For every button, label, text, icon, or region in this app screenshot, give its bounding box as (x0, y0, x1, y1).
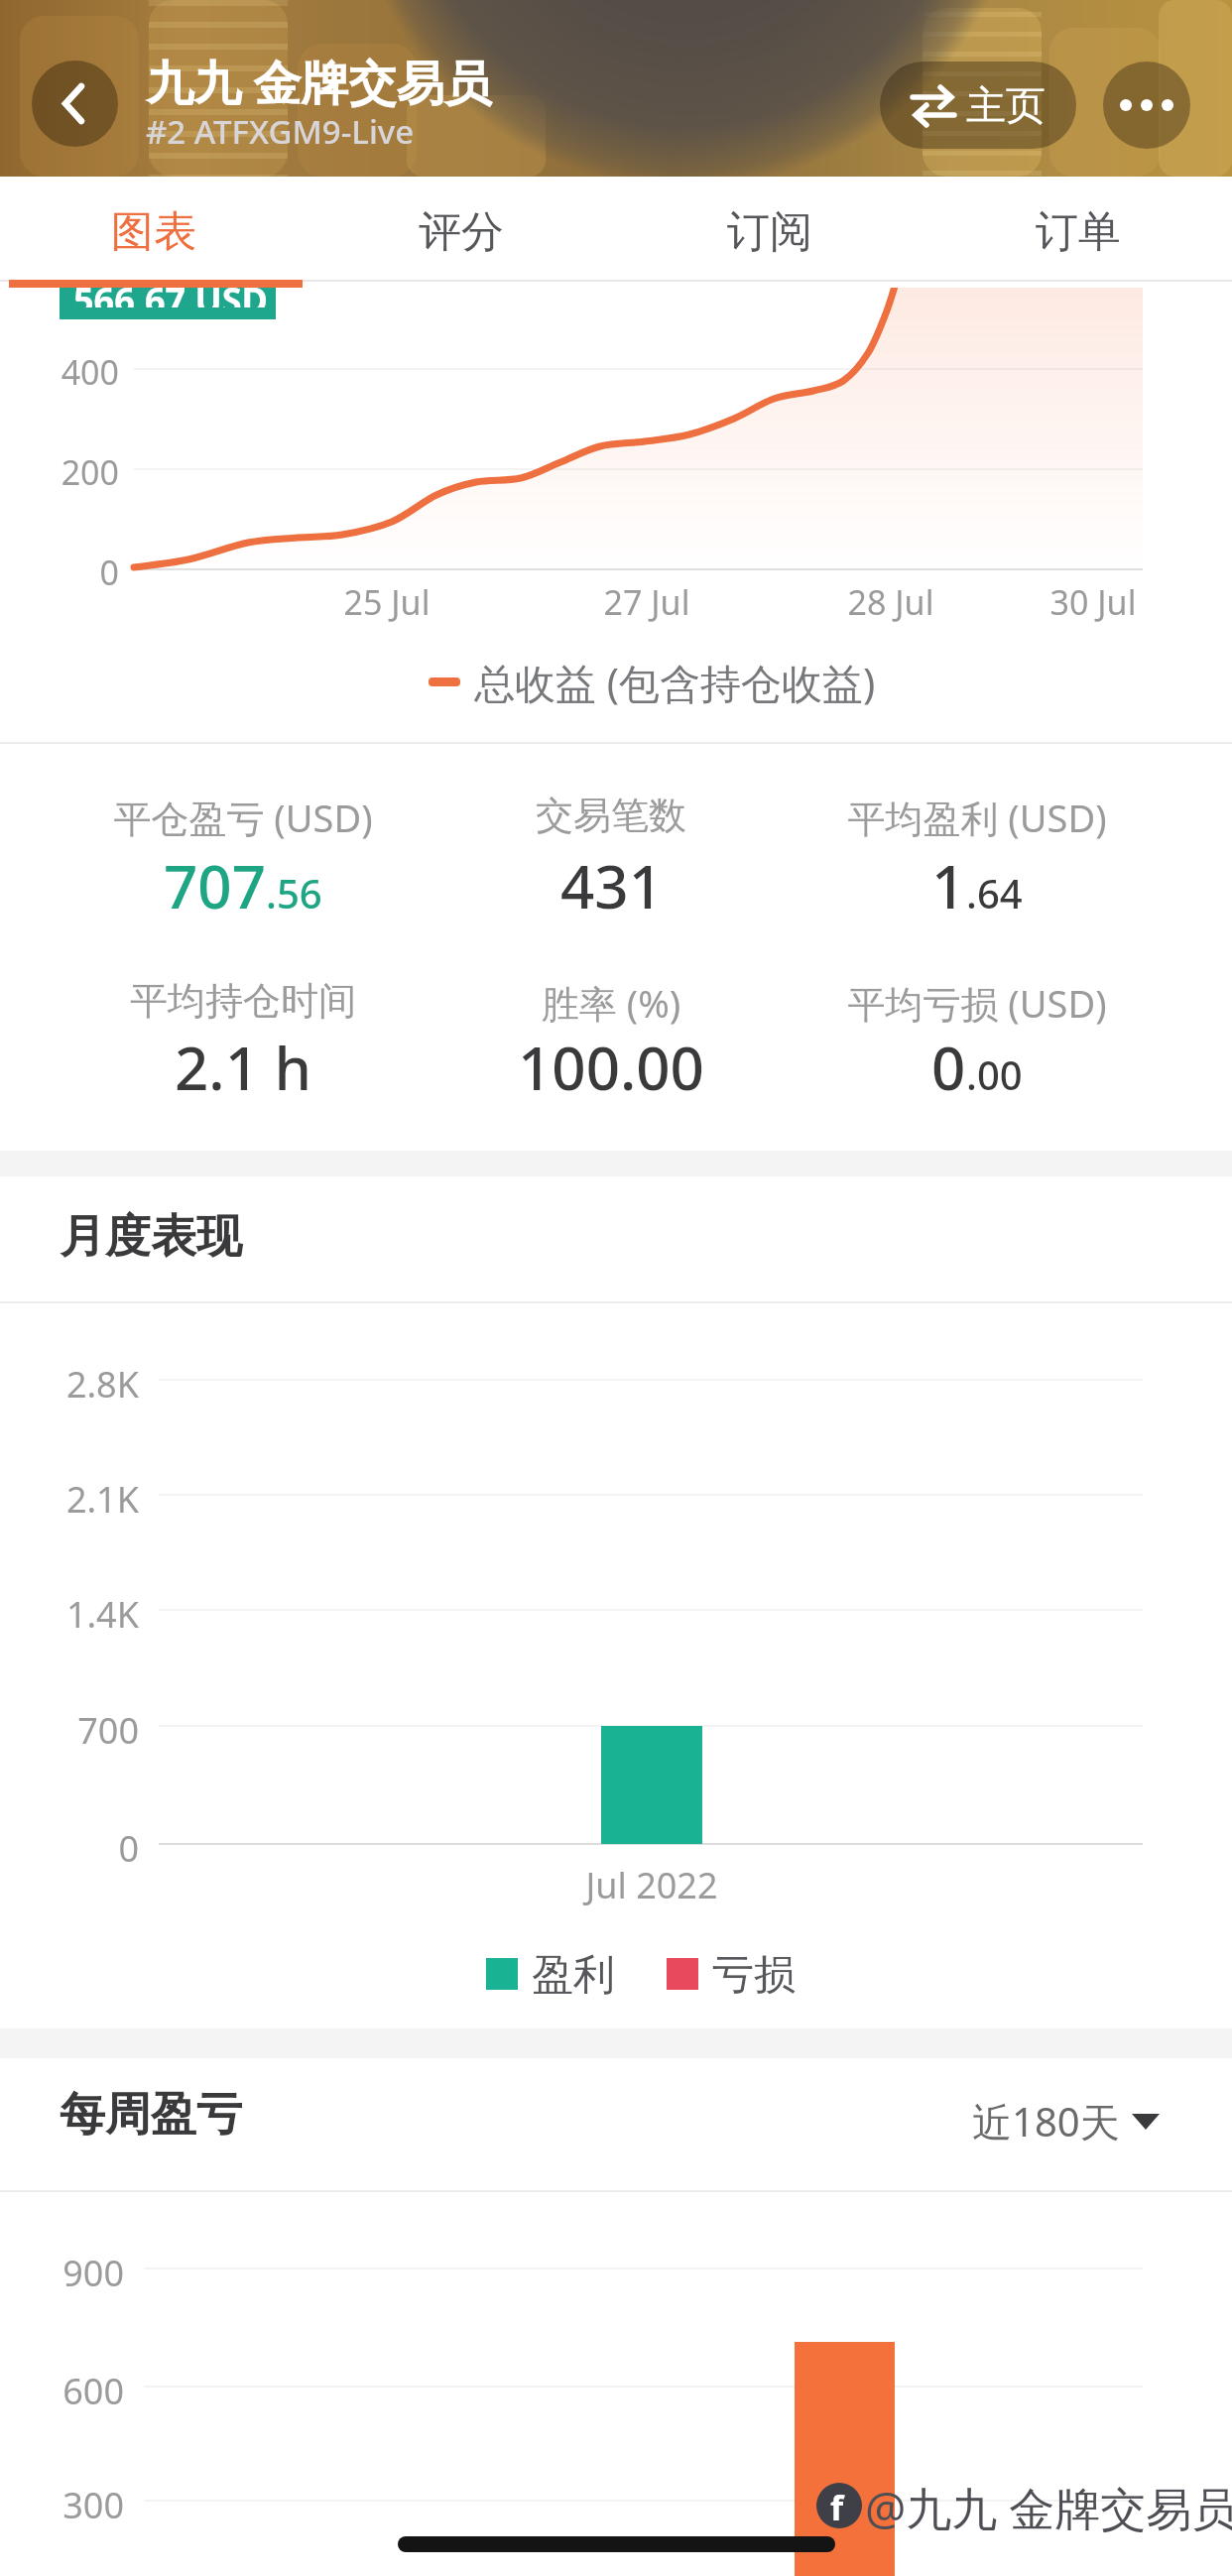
staticText: 平均持仓时间 (35, 977, 451, 1025)
staticText: 300 (25, 2481, 124, 2529)
staticText: 交易笔数 (403, 792, 819, 839)
staticText: 盈利 (532, 1949, 615, 2002)
staticText: 566.67 USD (73, 288, 268, 307)
staticText: Jul 2022 (562, 1861, 741, 1909)
staticText: 0 (40, 550, 119, 595)
staticText: 400 (40, 349, 119, 395)
staticText: 200 (40, 449, 119, 495)
staticText: #2 ATFXGM9-Live (146, 109, 415, 154)
staticText: 2.1 h (175, 1027, 312, 1108)
staticText: 1 (931, 845, 966, 926)
staticText: .64 (966, 866, 1023, 920)
staticText: 600 (25, 2367, 124, 2415)
staticText: 月度表现 (60, 1208, 242, 1266)
button[interactable]: 图表 (0, 177, 308, 288)
staticText: 评分 (419, 205, 504, 259)
staticText: 平均亏损 (USD) (769, 977, 1185, 1029)
staticText: .56 (266, 866, 322, 920)
staticText: 订阅 (727, 205, 812, 259)
staticText: 2.1K (40, 1475, 139, 1524)
button[interactable]: 订阅 (615, 177, 924, 288)
staticText: 28 Jul (811, 579, 970, 625)
staticText: 近180天 (972, 2094, 1120, 2148)
staticText: 平均盈利 (USD) (769, 792, 1185, 843)
staticText: 100.00 (518, 1027, 704, 1108)
staticText: 2.8K (40, 1360, 139, 1409)
staticText: 0 (931, 1027, 966, 1108)
staticText: .00 (966, 1047, 1023, 1101)
staticText: 九九 金牌交易员 (146, 50, 492, 115)
staticText: 图表 (111, 205, 196, 259)
staticText: 27 Jul (567, 579, 726, 625)
staticText: 胜率 (%) (403, 977, 819, 1029)
button[interactable] (32, 61, 118, 147)
staticText: 30 Jul (1014, 579, 1172, 625)
staticText: f (830, 2485, 844, 2528)
staticText: 总收益 (包含持仓收益) (474, 655, 876, 710)
button[interactable] (1103, 61, 1190, 149)
staticText: 亏损 (712, 1949, 796, 2002)
staticText: 0 (40, 1824, 139, 1873)
button[interactable]: 主页 (880, 61, 1076, 149)
staticText: 主页 (966, 80, 1046, 130)
staticText: @九九 金牌交易员 (865, 2477, 1232, 2539)
staticText: 1.4K (40, 1590, 139, 1639)
button[interactable]: 评分 (308, 177, 615, 288)
button[interactable]: 订单 (924, 177, 1232, 288)
staticText: 700 (40, 1706, 139, 1755)
staticText: 25 Jul (308, 579, 466, 625)
staticText: 900 (25, 2249, 124, 2297)
staticText: 订单 (1036, 205, 1121, 259)
staticText: 707 (164, 845, 266, 926)
staticText: 平仓盈亏 (USD) (35, 792, 451, 843)
staticText: 每周盈亏 (60, 2086, 242, 2144)
staticText: 431 (560, 845, 663, 926)
button[interactable]: 近180天 (972, 2094, 1160, 2148)
